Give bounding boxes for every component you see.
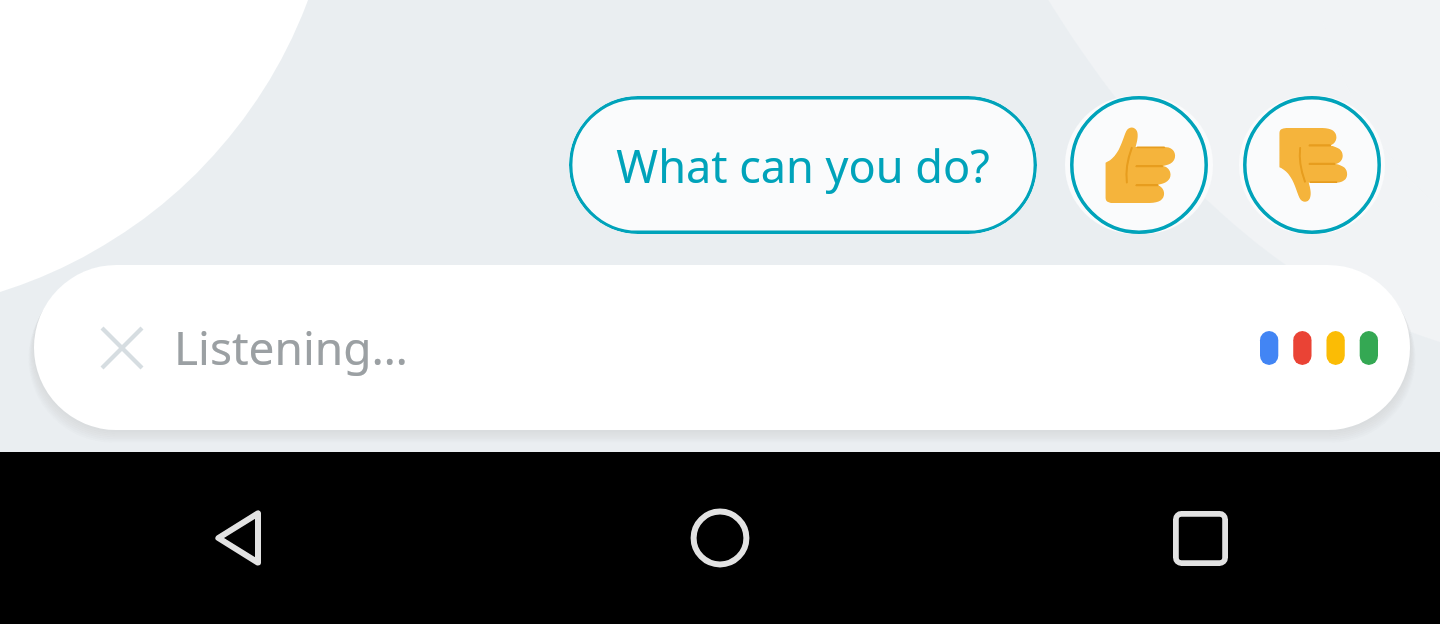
staticText: Listening… xyxy=(174,316,408,379)
button[interactable]: Recent apps xyxy=(960,452,1440,624)
staticText: What can you do? xyxy=(616,135,990,196)
button[interactable]: What can you do? xyxy=(569,96,1037,234)
button[interactable]: Home xyxy=(480,452,960,624)
button[interactable]: Close xyxy=(34,265,1410,430)
other: Google Assistant xyxy=(1260,331,1378,365)
button[interactable]: Close xyxy=(84,310,160,386)
button[interactable]: Thumbs up xyxy=(1065,96,1213,234)
button[interactable]: Back xyxy=(0,452,480,624)
button[interactable]: Thumbs down xyxy=(1239,96,1385,234)
